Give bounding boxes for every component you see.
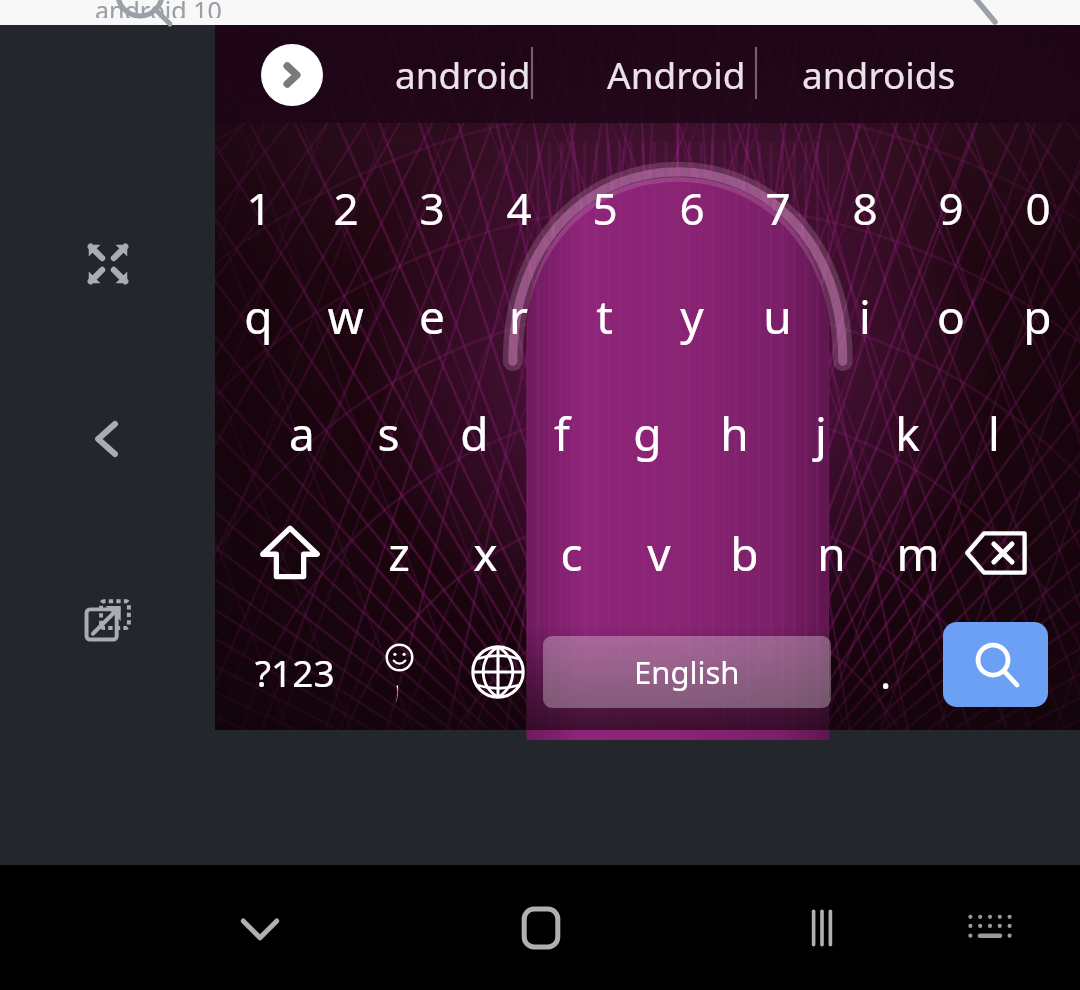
staticText: 4	[506, 178, 532, 238]
button[interactable]: v	[615, 497, 702, 609]
staticText: n	[817, 522, 846, 585]
button[interactable]: Backspace	[942, 497, 1054, 609]
staticText: android 10	[95, 0, 222, 18]
button[interactable]: 4	[475, 155, 562, 260]
button[interactable]: f	[518, 377, 605, 489]
button[interactable]: k	[864, 377, 951, 489]
staticText: a	[289, 402, 315, 465]
button[interactable]: android 10	[0, 0, 1080, 25]
button[interactable]: Recents	[767, 873, 877, 983]
staticText: q	[244, 285, 273, 348]
button[interactable]: g	[604, 377, 691, 489]
button[interactable]: 9	[907, 155, 994, 260]
staticText: h	[720, 402, 749, 465]
staticText: w	[327, 285, 364, 348]
staticText: 8	[852, 178, 878, 238]
button[interactable]: c	[528, 497, 615, 609]
staticText: 2	[333, 178, 359, 238]
button[interactable]: 5	[561, 155, 648, 260]
button[interactable]: 6	[648, 155, 735, 260]
button[interactable]: b	[701, 497, 788, 609]
button[interactable]: .	[840, 613, 932, 731]
button[interactable]: t	[561, 260, 648, 372]
button[interactable]: Change keyboard	[935, 873, 1045, 983]
button[interactable]: r	[475, 260, 562, 372]
button[interactable]: z	[355, 497, 442, 609]
staticText: k	[895, 402, 920, 465]
button[interactable]: Change language	[450, 613, 545, 731]
staticText: Android	[607, 49, 746, 99]
button[interactable]: androids	[771, 25, 987, 123]
staticText: android	[395, 49, 531, 99]
staticText: t	[596, 285, 613, 348]
button[interactable]: Android	[570, 25, 783, 123]
staticText: v	[647, 522, 671, 585]
button[interactable]: j	[777, 377, 864, 489]
staticText: m	[896, 522, 940, 585]
staticText: 3	[419, 178, 445, 238]
staticText: g	[633, 402, 662, 465]
button[interactable]: 7	[734, 155, 821, 260]
button[interactable]: 3	[388, 155, 475, 260]
button[interactable]: Home	[486, 873, 596, 983]
staticText: j	[815, 402, 827, 465]
button[interactable]: 8	[821, 155, 908, 260]
button[interactable]: w	[302, 260, 389, 372]
button[interactable]: 0	[994, 155, 1080, 260]
button[interactable]: q	[215, 260, 302, 372]
staticText: s	[377, 402, 400, 465]
staticText: 5	[592, 178, 618, 238]
button[interactable]: More suggestions	[261, 44, 323, 106]
button[interactable]: y	[648, 260, 735, 372]
staticText: l	[988, 402, 1000, 465]
button[interactable]: m	[874, 497, 961, 609]
button[interactable]: l	[950, 377, 1037, 489]
staticText: 7	[765, 178, 791, 238]
staticText: x	[473, 522, 498, 585]
staticText: androids	[802, 49, 956, 99]
button[interactable]: Pop out	[79, 592, 137, 650]
staticText: 6	[679, 178, 705, 238]
staticText: b	[730, 522, 759, 585]
staticText: u	[763, 285, 792, 348]
staticText: ?123	[255, 647, 335, 697]
staticText: o	[937, 285, 965, 348]
staticText: d	[460, 402, 489, 465]
button[interactable]: o	[907, 260, 994, 372]
button[interactable]: android	[356, 25, 569, 123]
staticText: z	[388, 522, 410, 585]
button[interactable]: h	[691, 377, 778, 489]
button[interactable]: Emoji	[355, 613, 450, 731]
staticText: 0	[1025, 178, 1051, 238]
staticText: r	[509, 285, 528, 348]
button[interactable]: Search	[943, 622, 1048, 707]
button[interactable]: a	[258, 377, 345, 489]
staticText: .	[880, 644, 892, 701]
button[interactable]: e	[388, 260, 475, 372]
button[interactable]: u	[734, 260, 821, 372]
button[interactable]: Hide keyboard	[205, 873, 315, 983]
button[interactable]: x	[442, 497, 529, 609]
button[interactable]: s	[345, 377, 432, 489]
staticText: 1	[246, 178, 272, 238]
button[interactable]: d	[431, 377, 518, 489]
button[interactable]: n	[788, 497, 875, 609]
button[interactable]: Full screen	[79, 235, 137, 293]
staticText: i	[859, 285, 871, 348]
staticText: 9	[938, 178, 964, 238]
button[interactable]: Shift	[237, 497, 342, 609]
button[interactable]: Back	[79, 410, 137, 468]
button[interactable]: p	[994, 260, 1080, 372]
button[interactable]: i	[821, 260, 908, 372]
staticText: e	[419, 285, 445, 348]
staticText: f	[554, 402, 570, 465]
staticText: c	[560, 522, 583, 585]
staticText: y	[680, 285, 704, 348]
staticText: p	[1023, 285, 1052, 348]
button[interactable]: ?123	[237, 613, 352, 731]
button[interactable]: 2	[302, 155, 389, 260]
button[interactable]: English	[543, 636, 831, 708]
staticText: English	[634, 651, 740, 693]
button[interactable]: 1	[215, 155, 302, 260]
